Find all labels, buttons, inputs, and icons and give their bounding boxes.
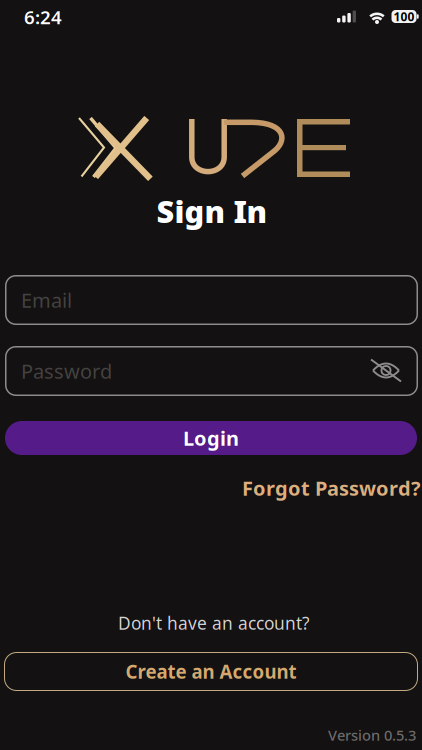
staticText: Sign In [156, 191, 267, 231]
staticText: Don't have an account? [118, 611, 310, 634]
staticText: Password [21, 358, 112, 384]
button[interactable]: Email [5, 275, 418, 325]
staticText: Email [21, 287, 72, 313]
button[interactable]: Login [5, 421, 417, 455]
staticText: Create an Account [125, 659, 296, 684]
button[interactable]: Show password [369, 355, 403, 385]
staticText: Login [183, 425, 239, 451]
staticText: Version 0.5.3 [328, 725, 416, 745]
staticText: 100 [393, 8, 414, 24]
button[interactable]: Create an Account [4, 652, 418, 691]
button[interactable]: Forgot Password? [242, 475, 421, 501]
button[interactable]: Password [5, 346, 418, 396]
staticText: 6:24 [24, 5, 62, 29]
staticText: Forgot Password? [242, 475, 421, 501]
